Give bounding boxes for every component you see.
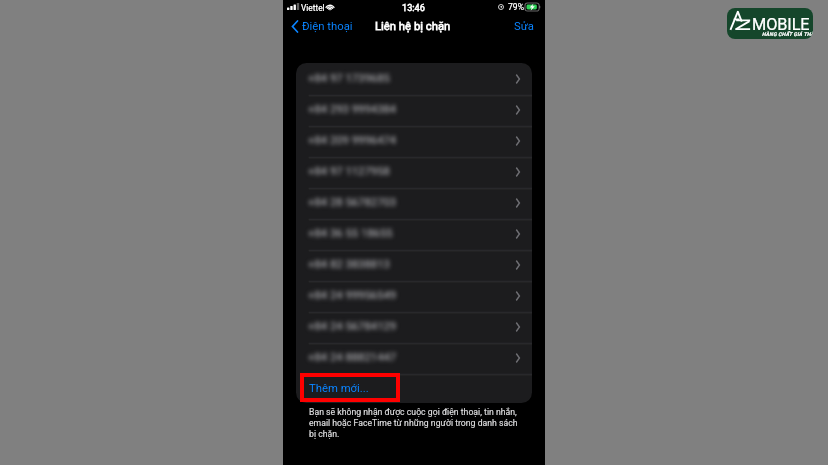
staticText: Sửa — [514, 20, 534, 33]
button[interactable]: Thêm mới... — [296, 373, 532, 403]
button[interactable]: Blocked phone number — [296, 218, 532, 249]
staticText: MOBILE — [752, 15, 810, 34]
staticText: +84 36 55 18655 — [308, 227, 393, 240]
staticText: +84 24 56784129 — [308, 320, 397, 333]
staticText: +84 24 99956549 — [308, 289, 397, 302]
button[interactable]: Blocked phone number — [296, 280, 532, 311]
staticText: +84 82 3838813 — [308, 258, 390, 271]
button[interactable]: Blocked phone number — [296, 342, 532, 373]
button[interactable]: Blocked phone number — [296, 125, 532, 156]
button[interactable]: Blocked phone number — [296, 156, 532, 187]
other: AZ Mobile watermark — [727, 8, 813, 39]
button[interactable]: Blocked phone number — [296, 187, 532, 218]
staticText: +84 97 1127958 — [308, 165, 390, 178]
staticText: +84 28 56782703 — [308, 196, 397, 209]
staticText: Bạn sẽ không nhận được cuộc gọi điện tho… — [309, 407, 518, 439]
button[interactable]: Blocked phone number — [296, 249, 532, 280]
staticText: +84 24 88821447 — [308, 351, 397, 364]
button[interactable]: Blocked phone number — [296, 311, 532, 342]
button[interactable]: Blocked phone number — [296, 63, 532, 94]
staticText: Viettel — [301, 3, 325, 13]
staticText: Thêm mới... — [309, 382, 369, 395]
staticText: +84 293 9994384 — [308, 103, 397, 116]
staticText: HÀNG CHẤT GIÁ THẬT — [762, 31, 813, 37]
staticText: Liên hệ bị chặn — [375, 20, 451, 33]
staticText: +84 97 1739685 — [308, 72, 390, 85]
button[interactable]: Điện thoại — [283, 16, 358, 37]
staticText: Điện thoại — [302, 20, 353, 33]
staticText: 79% — [508, 2, 524, 12]
button[interactable]: Sửa — [506, 16, 545, 37]
button[interactable]: Blocked phone number — [296, 94, 532, 125]
staticText: 13:46 — [402, 2, 425, 13]
staticText: +84 209 9996474 — [308, 134, 397, 147]
